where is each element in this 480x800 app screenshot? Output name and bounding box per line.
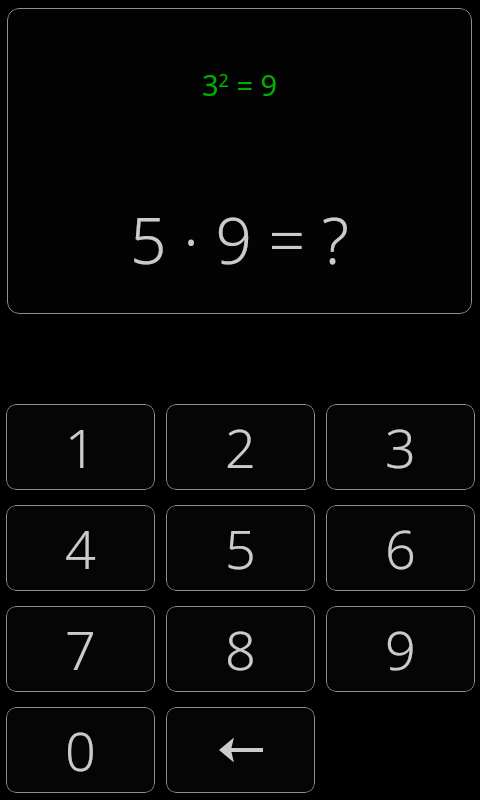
staticText: 4 <box>65 511 96 585</box>
button[interactable]: 7 <box>6 606 155 692</box>
button[interactable]: 1 <box>6 404 155 490</box>
button[interactable]: 2 <box>166 404 315 490</box>
staticText: 0 <box>65 713 96 787</box>
staticText: 9 <box>385 612 416 686</box>
button[interactable]: 8 <box>166 606 315 692</box>
button[interactable]: 5 <box>166 505 315 591</box>
staticText: 2 <box>225 410 256 484</box>
staticText: 5 · 9 = ? <box>130 196 349 283</box>
button[interactable]: Backspace <box>166 707 315 793</box>
staticText: 3 <box>385 410 416 484</box>
staticText: 5 <box>225 511 256 585</box>
staticText: 8 <box>225 612 256 686</box>
staticText: 7 <box>65 612 96 686</box>
button[interactable]: 4 <box>6 505 155 591</box>
staticText: 1 <box>65 410 96 484</box>
staticText: 32 = 9 <box>202 65 278 104</box>
button[interactable]: 6 <box>326 505 475 591</box>
button[interactable]: 9 <box>326 606 475 692</box>
staticText: 6 <box>385 511 416 585</box>
button[interactable]: 32 = 9 <box>7 8 472 314</box>
button[interactable]: 3 <box>326 404 475 490</box>
button[interactable]: 0 <box>6 707 155 793</box>
